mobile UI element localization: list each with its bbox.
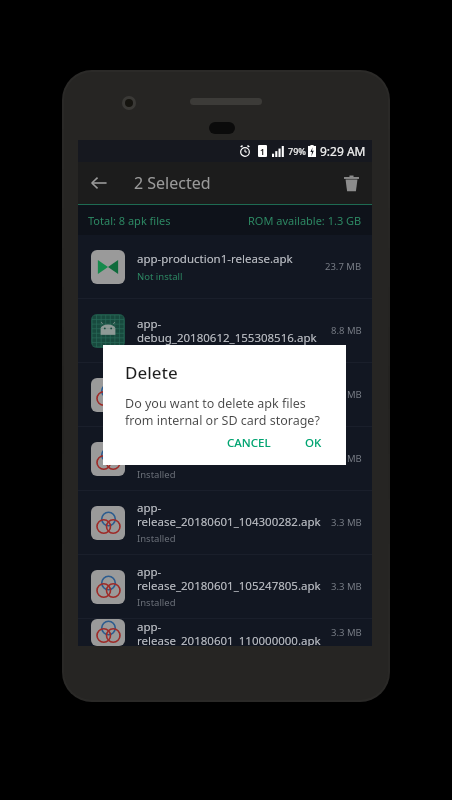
button[interactable]: app-release_20180601_110000000.apk: [78, 619, 372, 646]
staticText: 3.3 MB: [331, 626, 362, 639]
staticText: app-debug_20180612_155308516.apk: [137, 316, 325, 345]
staticText: 23.7 MB: [325, 260, 362, 273]
staticText: Not install: [137, 270, 183, 283]
staticText: Installed: [137, 468, 176, 481]
staticText: 79%: [288, 145, 306, 157]
staticText: app-production1-release.apk: [137, 251, 293, 267]
staticText: CANCEL: [227, 435, 271, 449]
button[interactable]: OK: [297, 429, 330, 455]
button[interactable]: app-release_20180601_105247805.apk: [78, 555, 372, 618]
staticText: app-release_20180601_103912345.apk: [137, 372, 325, 401]
staticText: 3.3 MB: [331, 388, 362, 401]
staticText: Installed: [137, 404, 176, 417]
button[interactable]: app-release_20180601_104156789.apk: [78, 427, 372, 490]
button[interactable]: app-release_20180601_103912345.apk: [78, 363, 372, 426]
staticText: 2 Selected: [134, 172, 211, 194]
button[interactable]: CANCEL: [219, 429, 279, 455]
staticText: ROM available: 1.3 GB: [248, 213, 362, 228]
button[interactable]: app-release_20180601_104300282.apk: [78, 491, 372, 554]
staticText: 8.8 MB: [331, 324, 362, 337]
button[interactable]: Delete: [330, 162, 372, 204]
staticText: Total: 8 apk files: [88, 213, 171, 228]
staticText: Installed: [137, 532, 176, 545]
staticText: Do you want to delete apk files from int…: [125, 395, 330, 429]
staticText: app-release_20180601_104300282.apk: [137, 500, 325, 529]
staticText: 3.3 MB: [331, 580, 362, 593]
staticText: 9:29 AM: [320, 143, 366, 159]
staticText: 3.3 MB: [331, 516, 362, 529]
staticText: 1: [260, 146, 265, 157]
staticText: Installed: [137, 596, 176, 609]
staticText: app-release_20180601_110000000.apk: [137, 619, 325, 646]
staticText: Delete: [125, 361, 178, 384]
staticText: app-release_20180601_104156789.apk: [137, 436, 325, 465]
button[interactable]: Back: [78, 162, 120, 204]
button[interactable]: app-production1-release.apk: [78, 235, 372, 298]
staticText: 3.3 MB: [331, 452, 362, 465]
staticText: OK: [305, 435, 322, 449]
button[interactable]: app-debug_20180612_155308516.apk: [78, 299, 372, 362]
staticText: app-release_20180601_105247805.apk: [137, 564, 325, 593]
